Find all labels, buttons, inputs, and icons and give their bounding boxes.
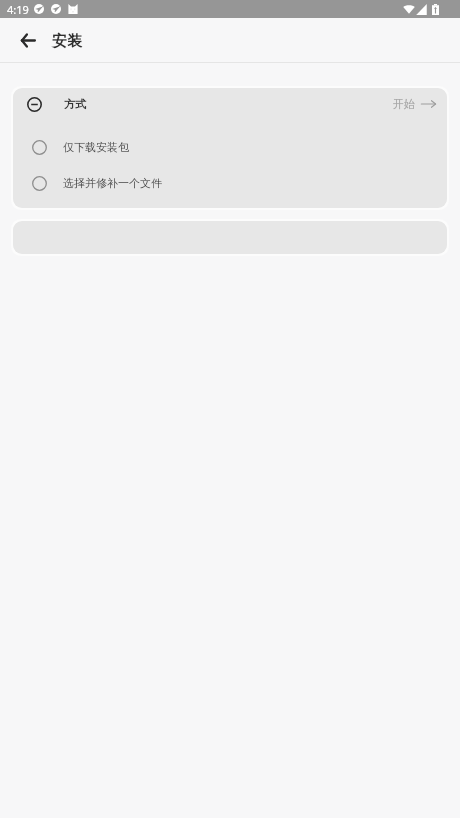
staticText: 安装 bbox=[52, 32, 82, 51]
staticText: 方式 bbox=[64, 97, 86, 111]
button[interactable]: Back bbox=[10, 22, 46, 58]
staticText: 4:19 bbox=[7, 2, 29, 17]
button[interactable]: 仅下载安装包 bbox=[13, 129, 447, 165]
staticText: 仅下载安装包 bbox=[63, 140, 129, 154]
button[interactable]: 方式 bbox=[13, 88, 447, 121]
staticText: 选择并修补一个文件 bbox=[63, 176, 162, 190]
button[interactable]: 选择并修补一个文件 bbox=[13, 165, 447, 201]
staticText: 开始 bbox=[393, 97, 415, 111]
